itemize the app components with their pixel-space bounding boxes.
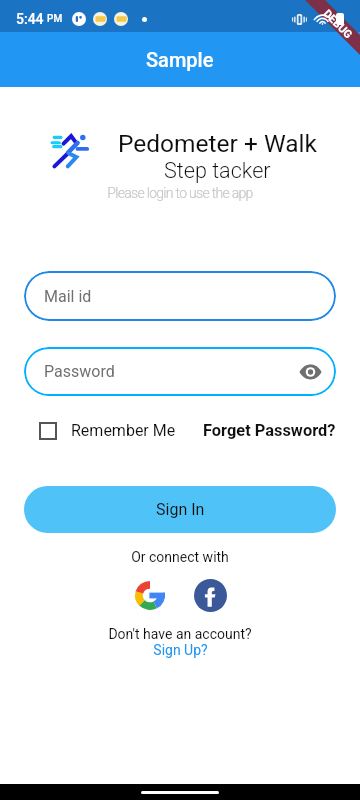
staticText: 5:44 xyxy=(16,11,44,27)
staticText: Please login to use the app xyxy=(0,185,360,201)
button[interactable]: Sign Up? xyxy=(153,642,208,658)
staticText: Or connect with xyxy=(0,549,360,565)
button[interactable]: Mail id xyxy=(24,271,336,321)
button[interactable]: Show password xyxy=(296,358,324,386)
button[interactable]: Sign in with Google xyxy=(133,578,167,612)
staticText: Sign In xyxy=(156,500,205,519)
staticText: Don't have an account? xyxy=(0,626,360,642)
staticText: Password xyxy=(44,362,115,381)
staticText: PM xyxy=(47,13,63,25)
staticText: Step tacker xyxy=(164,158,271,183)
staticText: DEBUG xyxy=(321,7,355,42)
button[interactable]: Sign in with Facebook xyxy=(193,578,227,612)
staticText: Sample xyxy=(146,48,214,71)
button[interactable]: Remember Me xyxy=(39,421,176,440)
staticText: Remember Me xyxy=(71,421,176,440)
staticText: Mail id xyxy=(44,287,92,306)
button[interactable]: Forget Password? xyxy=(203,421,336,440)
button[interactable]: Sign In xyxy=(24,486,336,533)
staticText: Pedometer + Walk xyxy=(118,129,317,158)
button[interactable]: Password xyxy=(24,347,336,396)
